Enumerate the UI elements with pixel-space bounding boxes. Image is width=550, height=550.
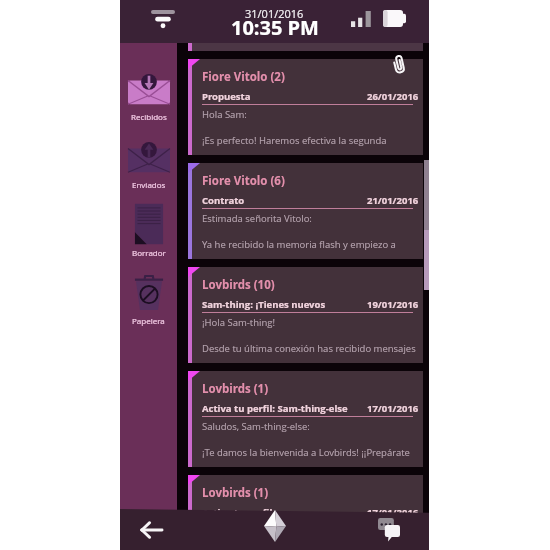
- staticText: Activa tu perfil: Sam-thing-else: [202, 402, 348, 415]
- button[interactable]: Lovbirds (1): [188, 475, 423, 550]
- button[interactable]: Back: [132, 511, 170, 549]
- staticText: 17/01/2016: [367, 506, 419, 519]
- button[interactable]: Messages: [374, 515, 404, 545]
- staticText: 17/01/2016: [367, 402, 419, 415]
- staticText: Enviados: [132, 179, 166, 190]
- staticText: Estimada señorita Vitolo:: [202, 212, 312, 225]
- staticText: ¡Es perfecto! Haremos efectiva la segund…: [202, 134, 387, 147]
- staticText: 19/01/2016: [367, 298, 419, 311]
- button[interactable]: Home: [256, 506, 294, 546]
- staticText: Hola Sam:: [202, 108, 247, 121]
- button[interactable]: Wi-Fi: [147, 3, 179, 35]
- button[interactable]: Papelera: [120, 270, 177, 338]
- staticText: Ya he recibido la memoria flash y empiez…: [202, 238, 396, 251]
- button[interactable]: Fiore Vitolo (2): [188, 59, 423, 155]
- button[interactable]: Recibidos: [120, 66, 177, 134]
- staticText: 10:35 PM: [231, 14, 319, 41]
- staticText: Fiore Vitolo (2): [202, 69, 285, 85]
- button[interactable]: Fiore Vitolo (6): [188, 163, 423, 259]
- staticText: 26/01/2016: [367, 90, 419, 103]
- staticText: Propuesta: [202, 90, 251, 103]
- staticText: 21/01/2016: [367, 194, 419, 207]
- staticText: ¡Hola Sam-thing!: [202, 316, 275, 329]
- staticText: Lovbirds (1): [202, 485, 269, 501]
- staticText: Borrador: [132, 247, 166, 258]
- staticText: Desde tu última conexión has recibido me…: [202, 342, 416, 355]
- button[interactable]: Enviados: [120, 134, 177, 202]
- staticText: Lovbirds (10): [202, 277, 275, 293]
- staticText: Contrato: [202, 194, 245, 207]
- staticText: Lovbirds (1): [202, 381, 269, 397]
- staticText: Activa tu perfil: [202, 506, 273, 519]
- button[interactable]: Lovbirds (10): [188, 267, 423, 363]
- button[interactable]: Lovbirds (1): [188, 371, 423, 467]
- staticText: Fiore Vitolo (6): [202, 173, 285, 189]
- button[interactable]: Borrador: [120, 202, 177, 270]
- staticText: Sam-thing: ¡Tienes nuevos: [202, 298, 326, 311]
- staticText: Recibidos: [131, 111, 167, 122]
- staticText: ¡Te damos la bienvenida a Lovbirds! ¡¡Pr…: [202, 446, 410, 459]
- staticText: Saludos, Sam-thing-else:: [202, 420, 310, 433]
- staticText: Papelera: [132, 315, 165, 326]
- staticText: 31/01/2016: [245, 6, 304, 21]
